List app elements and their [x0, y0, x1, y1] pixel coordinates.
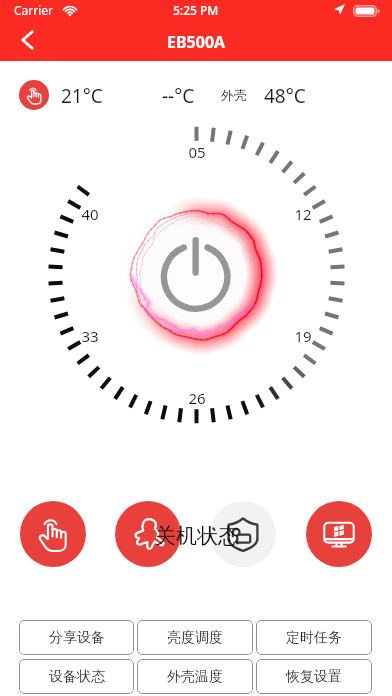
staticText: EB500A: [167, 31, 226, 53]
staticText: 21°C: [61, 83, 103, 109]
staticText: 分享设备: [49, 629, 105, 647]
staticText: 48°C: [264, 83, 306, 109]
staticText: 定时任务: [286, 629, 342, 647]
button[interactable]: 外壳温度: [137, 659, 253, 694]
staticText: 设备状态: [49, 668, 105, 686]
button[interactable]: Back: [10, 22, 46, 58]
staticText: 恢复设置: [286, 668, 342, 686]
staticText: 33: [76, 326, 104, 346]
staticText: 26: [183, 388, 211, 408]
button[interactable]: 恢复设置: [256, 659, 372, 694]
staticText: 关机状态: [155, 523, 239, 549]
staticText: 05: [183, 142, 211, 162]
button[interactable]: Touch control: [20, 501, 86, 567]
staticText: 外壳温度: [167, 668, 223, 686]
staticText: 外壳: [221, 87, 247, 103]
button[interactable]: Security: [210, 501, 276, 567]
staticText: 12: [289, 204, 317, 224]
button[interactable]: 亮度调度: [137, 620, 253, 655]
button[interactable]: Power: [156, 236, 236, 316]
button[interactable]: 设备状态: [19, 659, 134, 694]
button[interactable]: 定时任务: [256, 620, 372, 655]
staticText: 亮度调度: [167, 629, 223, 647]
button[interactable]: 分享设备: [19, 620, 134, 655]
staticText: Carrier: [14, 2, 54, 18]
button[interactable]: Monitor: [306, 501, 372, 567]
staticText: --°C: [162, 83, 195, 109]
button[interactable]: Device map: [115, 501, 181, 567]
staticText: 19: [289, 326, 317, 346]
staticText: 40: [76, 204, 104, 224]
staticText: 5:25 PM: [173, 2, 219, 18]
